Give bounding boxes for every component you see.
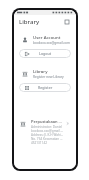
staticText: Library (19, 18, 40, 26)
staticText: No. 764 Kecamatan Cirebon Tim, (31, 137, 64, 141)
staticText: Perpustakaan Umum Daerah (31, 119, 64, 124)
staticText: 452131142 (31, 141, 47, 145)
staticText: bookxxx.xxx@gmail.com (31, 129, 64, 133)
staticText: Library (33, 68, 48, 74)
button[interactable]: Logout (19, 49, 71, 58)
staticText: Register new Library (33, 75, 64, 79)
button[interactable]: Register (19, 83, 71, 92)
button[interactable]: User Account (19, 34, 71, 45)
staticText: Address: Jl. K.H Wahid Hasyim (31, 133, 64, 137)
staticText: Register (38, 85, 53, 90)
button[interactable]: Perpustakaan Umum Daerah (14, 119, 76, 145)
staticText: Administrator: Daniel (31, 125, 62, 129)
button[interactable]: Settings (62, 17, 71, 26)
staticText: Logout (39, 51, 52, 56)
staticText: User Account (33, 34, 61, 40)
staticText: bookxxx.xxx@gmail.com (33, 41, 71, 45)
button[interactable]: Library (19, 68, 71, 79)
